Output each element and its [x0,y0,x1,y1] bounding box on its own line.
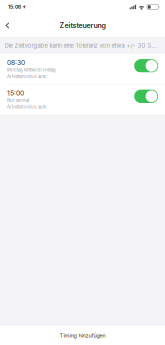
staticText: Timing hinzufügen [59,332,105,339]
staticText: Zeitsteuerung [59,21,105,30]
staticText: Nur einmal [7,98,29,103]
staticText: 08:30 [7,59,25,67]
staticText: Arbeitsmodus: auto [7,74,47,79]
staticText: Montag Mittwoch Freitag [7,67,56,73]
button[interactable]: Timing hinzufügen [0,326,165,345]
staticText: Arbeitsmodus: auto [7,104,47,109]
staticText: 15:06 [8,4,21,10]
staticText: Die Zeitvorgabe kann eine Toleranz von e… [4,42,157,49]
button[interactable]: 15:00 [0,84,165,114]
button[interactable]: Back [0,16,15,35]
staticText: 15:00 [7,89,24,97]
button[interactable]: 08:30 [0,54,165,84]
